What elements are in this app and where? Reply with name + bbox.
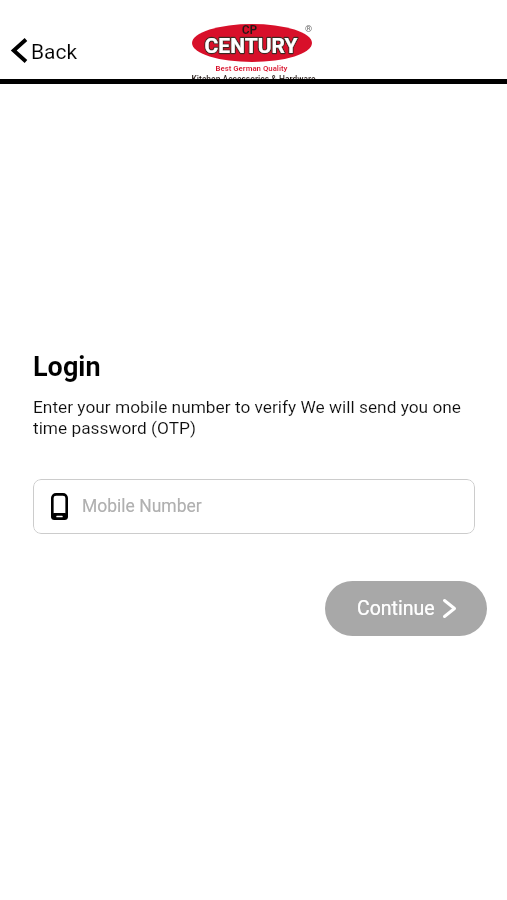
button[interactable]: Back — [3, 33, 92, 72]
staticText: Continue — [357, 597, 435, 620]
staticText: Enter your mobile number to verify We wi… — [33, 397, 474, 438]
staticText: Kitchen Accessories & Hardware — [191, 74, 316, 84]
button[interactable]: Mobile Number input — [33, 479, 475, 534]
staticText: ® — [305, 24, 313, 35]
staticText: Back — [31, 40, 78, 65]
staticText: Best German Quality — [194, 64, 309, 73]
staticText: Mobile Number — [82, 496, 202, 517]
staticText: Login — [33, 351, 101, 383]
staticText: CENTURY — [193, 34, 309, 59]
staticText: CENTURY — [193, 34, 309, 59]
button[interactable]: Continue — [325, 581, 487, 636]
staticText: CP — [192, 23, 307, 37]
